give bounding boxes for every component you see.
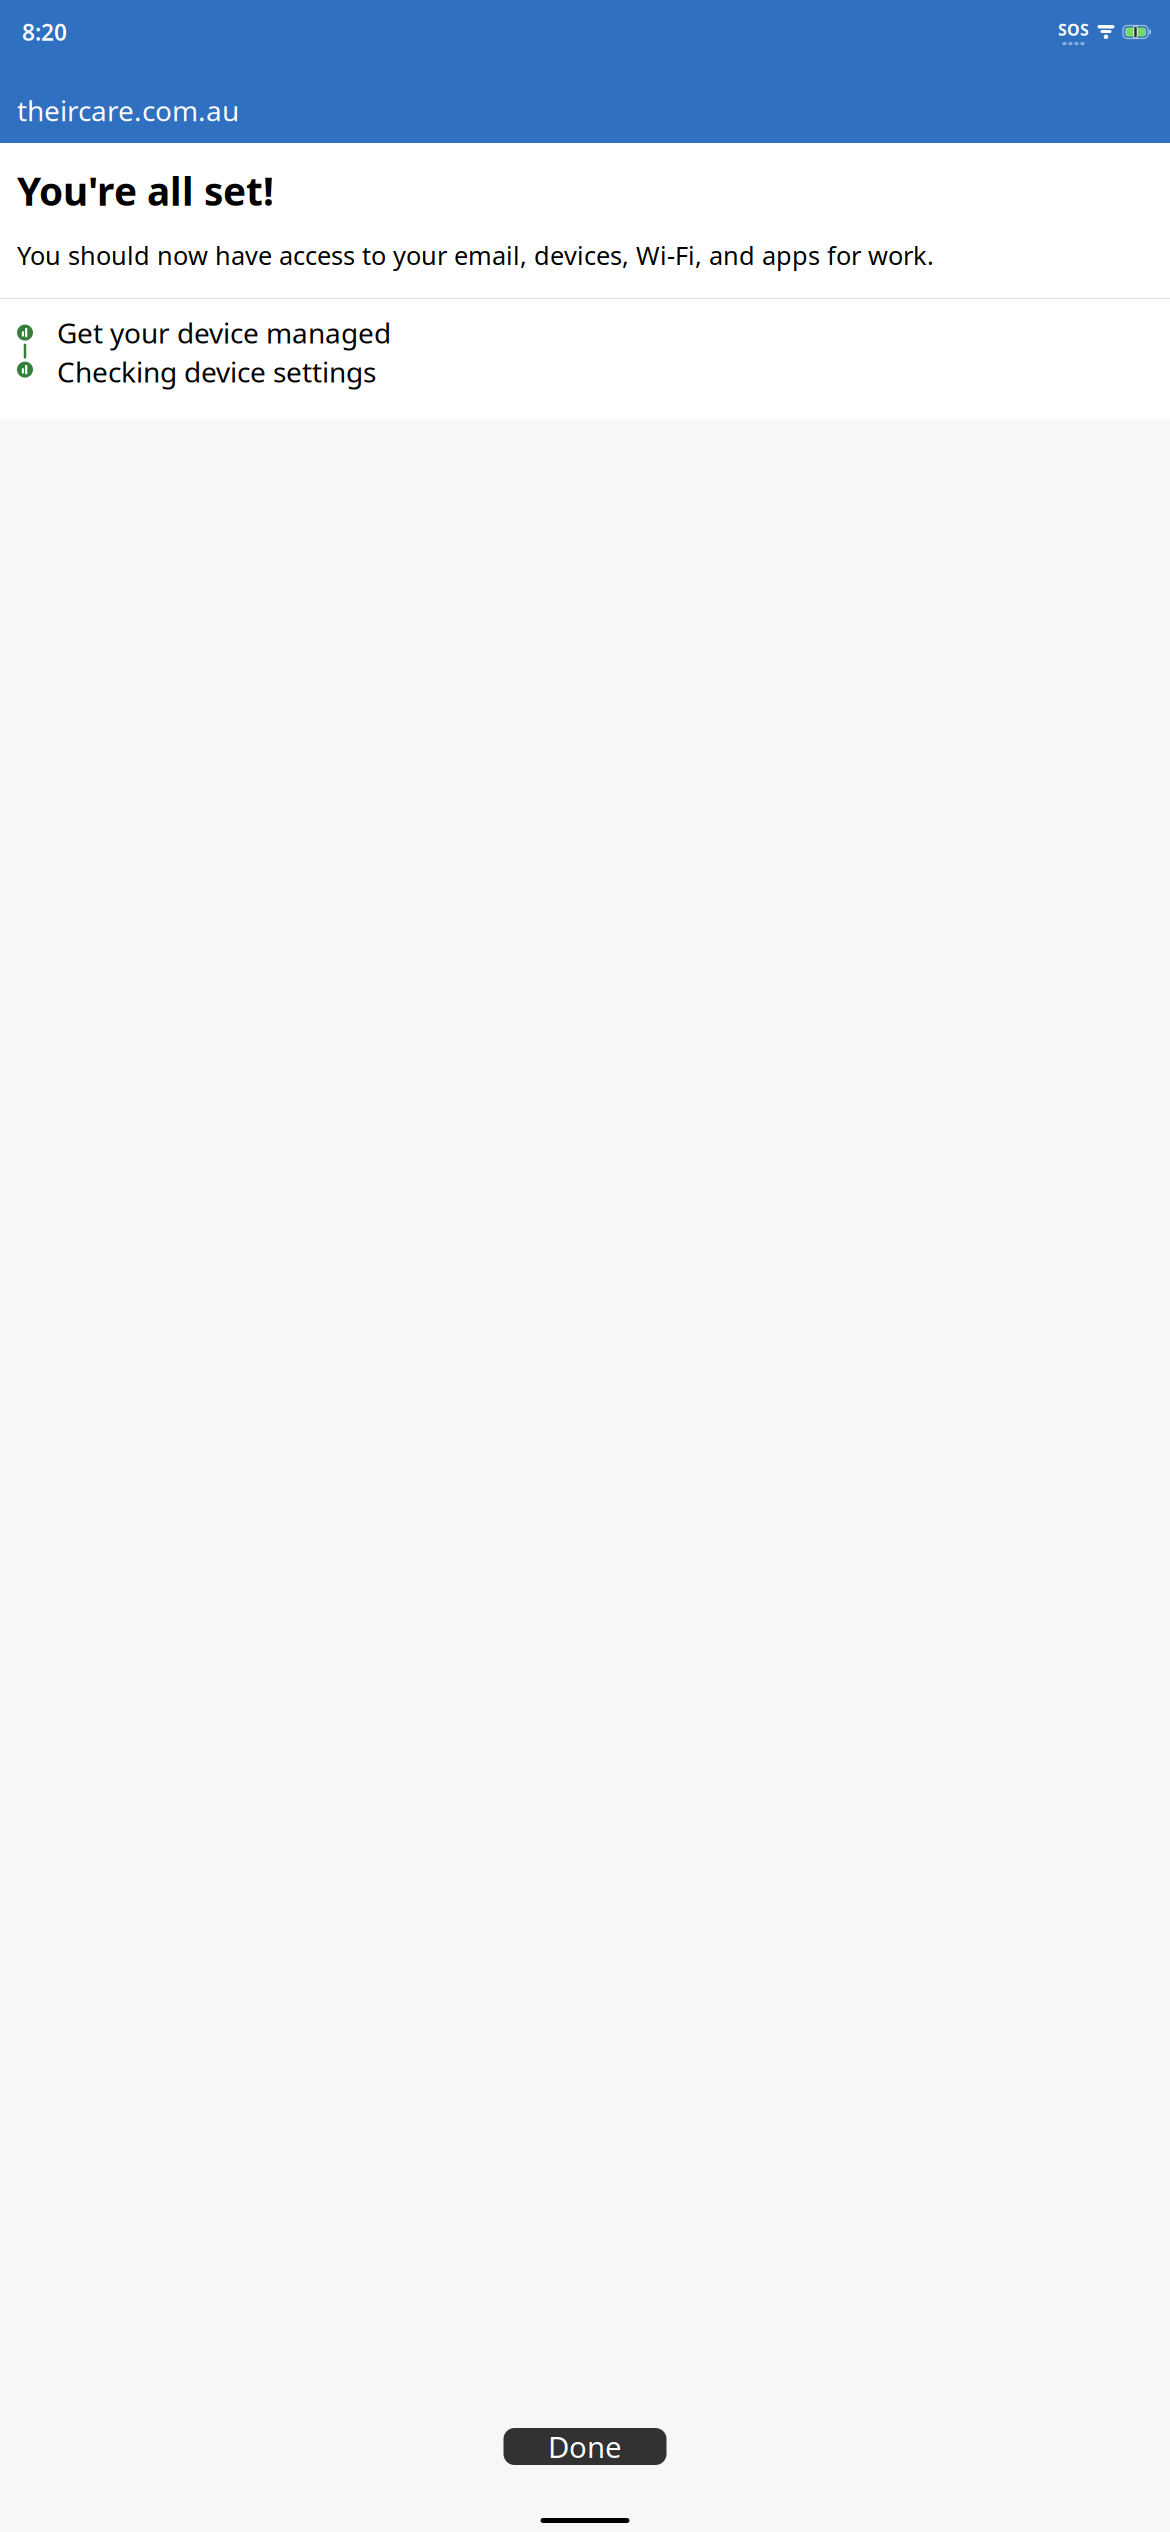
button[interactable]: Done	[503, 2428, 666, 2465]
staticText: theircare.com.au	[17, 92, 239, 129]
staticText: 8:20	[22, 17, 67, 47]
staticText: You should now have access to your email…	[17, 238, 934, 272]
staticText: You're all set!	[17, 165, 274, 216]
staticText: Get your device managed	[57, 314, 391, 351]
staticText: SOS	[1058, 19, 1089, 40]
staticText: Done	[548, 2427, 622, 2466]
staticText: Checking device settings	[57, 353, 376, 390]
